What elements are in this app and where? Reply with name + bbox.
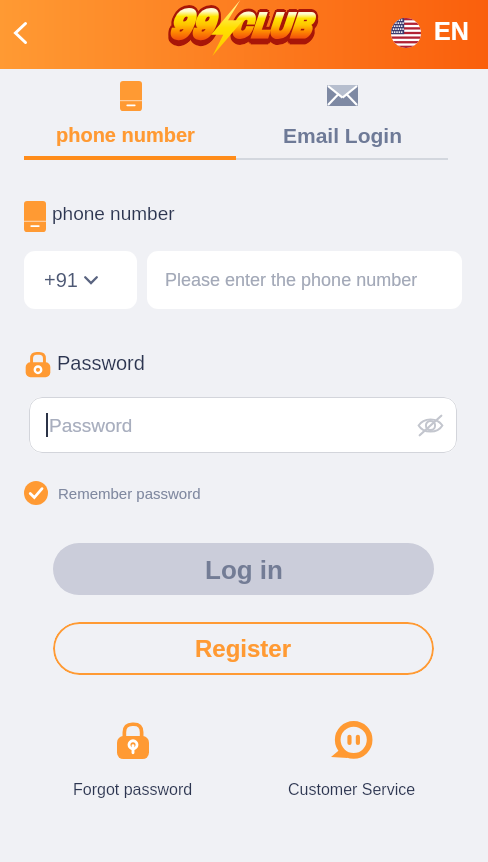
- staticText: CLUB: [227, 7, 307, 45]
- staticText: Email Login: [283, 124, 403, 147]
- staticText: +91: [44, 269, 78, 291]
- button[interactable]: +91: [24, 251, 137, 309]
- staticText: 99: [167, 3, 211, 48]
- staticText: CLUB: [229, 4, 310, 42]
- staticText: CLUB: [229, 7, 310, 45]
- staticText: CLUB: [227, 12, 308, 50]
- button[interactable]: Register: [53, 622, 434, 675]
- staticText: CLUB: [227, 11, 307, 49]
- staticText: CLUB: [227, 5, 308, 43]
- staticText: Customer Service: [288, 781, 416, 799]
- staticText: 99: [167, 9, 211, 54]
- staticText: Password: [49, 415, 133, 436]
- staticText: CLUB: [230, 12, 311, 50]
- staticText: 99: [169, 8, 213, 53]
- button[interactable]: [24, 75, 236, 155]
- staticText: CLUB: [229, 13, 310, 51]
- button[interactable]: Back: [0, 10, 43, 56]
- staticText: 99: [165, 3, 209, 48]
- staticText: Please enter the phone number: [165, 270, 418, 290]
- staticText: Forgot password: [73, 781, 193, 799]
- staticText: 99: [169, 5, 213, 50]
- staticText: Log in: [205, 555, 283, 584]
- staticText: EN: [434, 17, 469, 45]
- staticText: CLUB: [231, 7, 312, 45]
- button[interactable]: Please enter the phone number: [147, 251, 462, 309]
- staticText: 99: [165, 1, 209, 46]
- staticText: phone number: [56, 124, 195, 146]
- staticText: CLUB: [229, 10, 310, 48]
- staticText: 99: [165, 5, 209, 50]
- staticText: 99: [165, 8, 209, 53]
- button[interactable]: Log in: [53, 543, 434, 595]
- staticText: 99: [169, 3, 213, 48]
- staticText: 99: [167, 8, 211, 53]
- staticText: 99: [167, 6, 211, 51]
- staticText: CLUB: [229, 12, 310, 50]
- staticText: 99: [167, 0, 211, 45]
- staticText: phone number: [52, 203, 175, 224]
- button[interactable]: Show password: [416, 411, 444, 439]
- staticText: 99: [169, 1, 213, 46]
- staticText: Register: [195, 635, 292, 662]
- staticText: Password: [57, 352, 145, 374]
- staticText: CLUB: [231, 11, 312, 49]
- staticText: 99: [165, 7, 209, 52]
- staticText: CLUB: [227, 9, 308, 47]
- button[interactable]: Password: [29, 397, 457, 453]
- staticText: 99: [169, 7, 213, 52]
- button[interactable]: [236, 75, 448, 155]
- button[interactable]: Remember password: [24, 481, 201, 505]
- staticText: CLUB: [230, 5, 311, 43]
- staticText: CLUB: [230, 9, 311, 47]
- button[interactable]: Customer Service: [277, 722, 427, 799]
- staticText: Remember password: [58, 485, 201, 502]
- button[interactable]: Forgot password: [58, 722, 208, 799]
